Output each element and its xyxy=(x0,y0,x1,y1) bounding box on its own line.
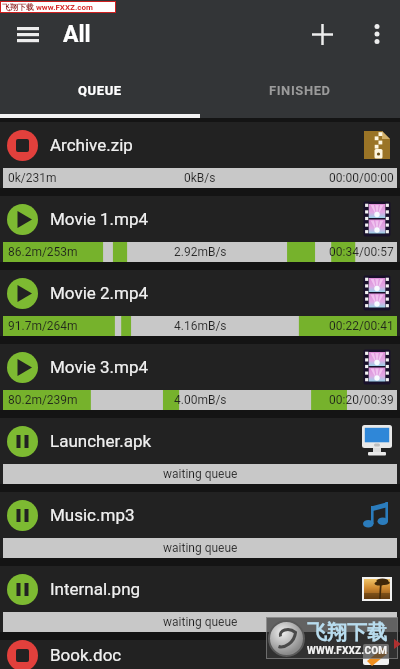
button[interactable] xyxy=(0,6,56,62)
staticText: 86.2m/253m xyxy=(8,245,78,259)
staticText: 00:20/00:39 xyxy=(329,393,394,407)
staticText: 00:00/00:00 xyxy=(329,171,394,185)
staticText: 0kB/s xyxy=(184,171,216,185)
staticText: 80.2m/239m xyxy=(8,393,78,407)
button[interactable]: Movie 3.mp4 xyxy=(0,344,400,410)
button[interactable]: FINISHED xyxy=(200,62,400,118)
staticText: Book.doc xyxy=(50,645,122,665)
staticText: waiting queue xyxy=(163,541,238,555)
button[interactable]: Movie 1.mp4 xyxy=(0,196,400,262)
staticText: 飞翔下载 xyxy=(307,620,387,645)
staticText: 00:22/00:41 xyxy=(329,319,394,333)
staticText: 0k/231m xyxy=(8,171,57,185)
staticText: 4.16mB/s xyxy=(174,319,227,333)
staticText: www.FXXZ.com xyxy=(34,3,93,12)
button[interactable]: QUEUE xyxy=(0,62,200,118)
button[interactable]: Book.doc xyxy=(0,640,400,669)
staticText: 2.92mB/s xyxy=(174,245,227,259)
button[interactable] xyxy=(300,6,344,62)
staticText: QUEUE xyxy=(78,83,122,98)
button[interactable]: Archive.zip xyxy=(0,122,400,188)
staticText: WWW.FXXZ.COM xyxy=(307,645,388,657)
staticText: 91.7m/264m xyxy=(8,319,78,333)
staticText: Movie 2.mp4 xyxy=(50,283,149,303)
staticText: 00:34/00:57 xyxy=(329,245,394,259)
staticText: Movie 1.mp4 xyxy=(50,209,149,229)
staticText: 飞翔下载 xyxy=(2,2,34,12)
staticText: 4.00mB/s xyxy=(174,393,227,407)
button[interactable]: Launcher.apk xyxy=(0,418,400,484)
button[interactable]: Internal.png xyxy=(0,566,400,632)
staticText: waiting queue xyxy=(163,615,238,629)
button[interactable]: Music.mp3 xyxy=(0,492,400,558)
staticText: Launcher.apk xyxy=(50,431,152,451)
staticText: All xyxy=(63,21,91,48)
staticText: Archive.zip xyxy=(50,135,133,155)
staticText: Music.mp3 xyxy=(50,505,135,525)
staticText: Movie 3.mp4 xyxy=(50,357,149,377)
button[interactable] xyxy=(357,6,397,62)
button[interactable]: Movie 2.mp4 xyxy=(0,270,400,336)
staticText: Internal.png xyxy=(50,579,141,599)
staticText: waiting queue xyxy=(163,467,238,481)
staticText: FINISHED xyxy=(269,83,331,98)
